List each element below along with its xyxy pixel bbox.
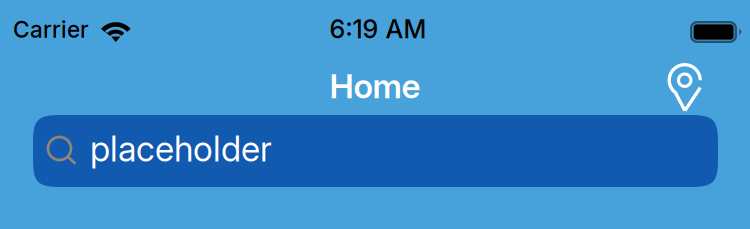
- button[interactable]: Search: [33, 115, 718, 187]
- staticText: 6:19 AM: [329, 14, 426, 44]
- staticText: Home: [329, 66, 420, 106]
- staticText: placeholder: [90, 128, 272, 170]
- button[interactable]: Location: [656, 58, 714, 116]
- staticText: Carrier: [13, 16, 89, 43]
